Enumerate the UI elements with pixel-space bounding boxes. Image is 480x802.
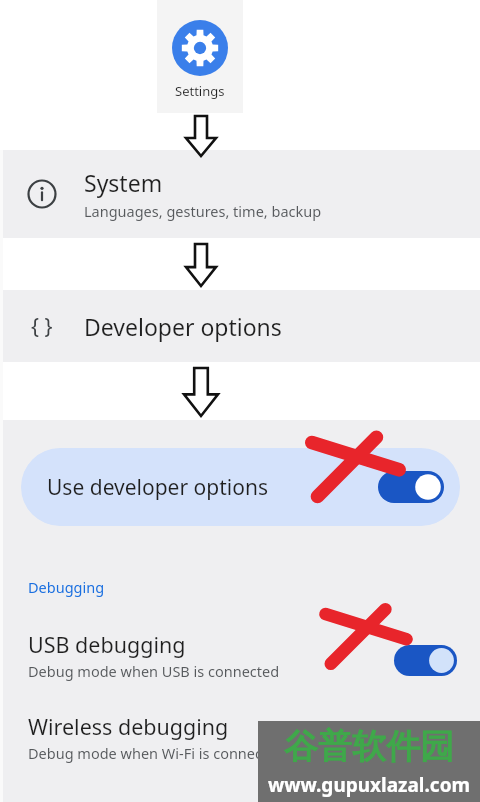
staticText: Debug mode when Wi-Fi is connected — [28, 743, 285, 763]
staticText: USB debugging — [28, 630, 186, 659]
button[interactable]: Use developer options toggle — [378, 471, 444, 503]
staticText: 谷普软件园 — [284, 725, 454, 768]
staticText: Developer options — [84, 311, 282, 342]
staticText: Debug mode when USB is connected — [28, 661, 280, 681]
staticText: Debugging — [28, 577, 105, 597]
staticText: Settings — [175, 82, 225, 100]
staticText: System — [84, 167, 163, 198]
button[interactable]: Settings — [157, 0, 243, 113]
button[interactable]: Use developer options — [21, 448, 460, 526]
button[interactable]: USB debugging toggle — [394, 645, 457, 676]
staticText: Use developer options — [47, 473, 268, 502]
button[interactable]: USB debugging — [0, 618, 480, 692]
button[interactable]: System — [0, 150, 480, 238]
staticText: Wireless debugging — [28, 712, 229, 741]
button[interactable]: Wireless debugging — [0, 706, 480, 780]
staticText: Languages, gestures, time, backup — [84, 201, 322, 221]
staticText: www.gupuxlazal.com — [268, 772, 471, 798]
staticText: { } — [31, 312, 53, 341]
button[interactable]: { } — [0, 290, 480, 362]
